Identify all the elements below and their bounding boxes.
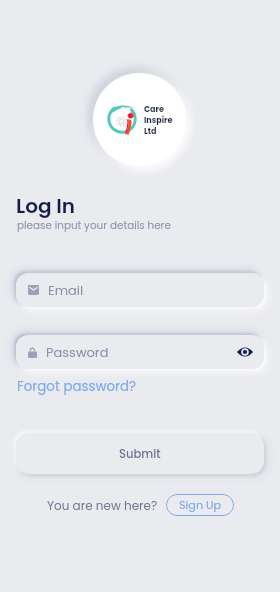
button[interactable]: Submit <box>16 433 264 474</box>
staticText: Log In <box>16 192 76 220</box>
staticText: Password <box>46 343 109 361</box>
staticText: Ltd <box>144 126 157 137</box>
staticText: please input your details here <box>17 218 171 233</box>
staticText: You are new here? <box>47 497 158 514</box>
staticText: Submit <box>119 446 161 462</box>
button[interactable]: Password <box>16 335 264 369</box>
button[interactable]: Email <box>16 273 264 307</box>
staticText: Forgot password? <box>17 377 137 396</box>
button[interactable]: Show password <box>235 342 255 362</box>
button[interactable]: Sign Up <box>166 494 234 516</box>
staticText: Sign Up <box>179 497 222 513</box>
staticText: Email <box>48 281 84 299</box>
staticText: Inspire <box>144 115 173 126</box>
button[interactable]: Forgot password? <box>16 377 138 396</box>
staticText: Care <box>144 104 164 115</box>
